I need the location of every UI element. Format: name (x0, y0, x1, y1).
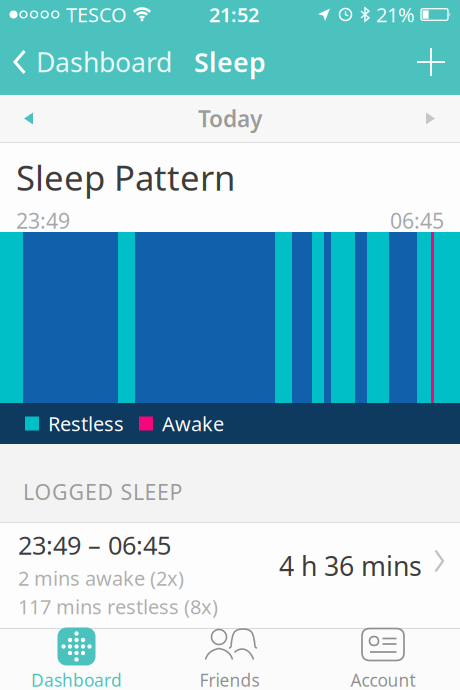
staticText: Friends (199, 668, 259, 690)
staticText: Restless (48, 410, 124, 437)
staticText: Sleep Pattern (16, 154, 235, 200)
staticText: LOGGED SLEEP (23, 478, 182, 506)
button[interactable] (0, 112, 34, 124)
button[interactable]: Dashboard (0, 44, 172, 80)
staticText: Dashboard (36, 44, 172, 80)
staticText: 21:52 (209, 1, 259, 28)
button[interactable]: Dashboard (0, 629, 153, 690)
staticText: 21% (376, 1, 415, 28)
staticText: 23:49 (16, 206, 70, 235)
button[interactable]: Account (306, 629, 460, 690)
staticText: 4 h 36 mins (279, 548, 422, 583)
staticText: TESCO (66, 1, 127, 28)
button[interactable]: 23:49 – 06:45 (0, 523, 460, 620)
staticText: Today (198, 103, 262, 133)
staticText: Dashboard (31, 668, 122, 690)
staticText: Awake (162, 410, 224, 437)
button[interactable]: Friends (153, 629, 306, 690)
staticText: Sleep (194, 44, 266, 80)
staticText: 117 mins restless (8x) (18, 593, 218, 620)
staticText: Account (350, 668, 415, 690)
button[interactable] (426, 112, 460, 124)
staticText: 23:49 – 06:45 (18, 528, 171, 562)
button[interactable] (417, 48, 460, 76)
staticText: 06:45 (390, 206, 444, 235)
staticText: 2 mins awake (2x) (18, 565, 184, 591)
